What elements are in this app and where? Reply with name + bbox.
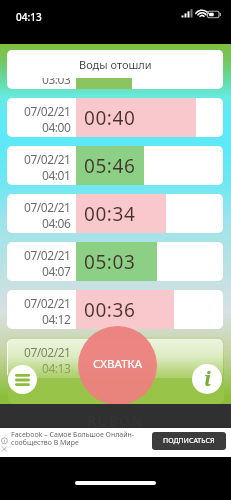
- staticText: СХВАТКА: [93, 356, 143, 372]
- staticText: 05:46: [84, 153, 136, 179]
- button[interactable]: 07/02/21: [7, 50, 223, 89]
- button[interactable]: 07/02/21: [7, 194, 223, 233]
- staticText: ПОДПИСАТЬСЯ: [163, 436, 215, 446]
- staticText: i: [204, 365, 212, 392]
- staticText: 00:36: [84, 297, 136, 323]
- staticText: сообщество В Мире: [11, 438, 79, 448]
- staticText: 00:34: [84, 201, 136, 227]
- staticText: 04:01: [42, 167, 71, 183]
- staticText: 03:03: [42, 71, 71, 87]
- button[interactable]: СХВАТКА: [78, 326, 157, 405]
- staticText: 00:40: [84, 105, 136, 131]
- staticText: 04:12: [42, 311, 71, 327]
- button[interactable]: 07/02/21: [7, 98, 223, 137]
- staticText: 04:06: [42, 215, 71, 231]
- staticText: 04:07: [42, 263, 71, 279]
- staticText: 07/02/21: [24, 151, 71, 167]
- button[interactable]: 07/02/21: [7, 146, 223, 185]
- staticText: RUBON: [87, 411, 144, 430]
- staticText: 07/02/21: [24, 247, 71, 263]
- staticText: 07/02/21: [24, 344, 71, 360]
- staticText: 04:13: [16, 10, 42, 24]
- button[interactable]: 07/02/21: [7, 290, 223, 329]
- button[interactable]: 07/02/21: [7, 339, 223, 378]
- button[interactable]: Воды отошли: [8, 50, 223, 78]
- button[interactable]: Menu: [8, 365, 37, 394]
- other: Ad choices: [1, 437, 8, 455]
- button[interactable]: ПОДПИСАТЬСЯ: [152, 432, 226, 450]
- staticText: 07/02/21: [24, 103, 71, 119]
- staticText: 04:00: [42, 119, 71, 135]
- button[interactable]: 07/02/21: [7, 242, 223, 281]
- staticText: Воды отошли: [79, 57, 152, 72]
- staticText: Facebook – Самое Большое Онлайн-: [11, 430, 135, 440]
- staticText: 07/02/21: [24, 199, 71, 215]
- staticText: 04:13: [42, 360, 71, 376]
- staticText: 07/02/21: [24, 295, 71, 311]
- button[interactable]: Info: [192, 364, 222, 394]
- other: Signal, wifi and battery status: [180, 8, 220, 22]
- staticText: 05:03: [84, 249, 136, 275]
